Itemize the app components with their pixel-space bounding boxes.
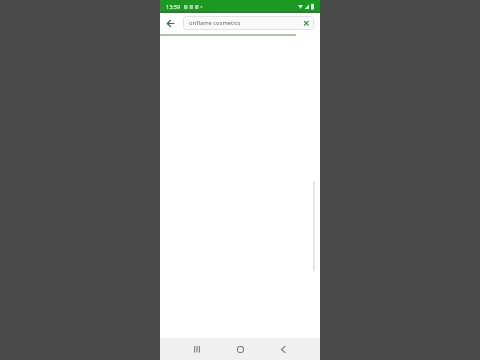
button[interactable]: oriflame cosmetics	[183, 16, 314, 30]
button[interactable]	[231, 340, 249, 358]
button[interactable]	[274, 340, 292, 358]
staticText: 13:59	[166, 3, 181, 10]
button[interactable]	[188, 340, 206, 358]
button[interactable]	[160, 13, 180, 33]
staticText: oriflame cosmetics	[189, 19, 241, 27]
